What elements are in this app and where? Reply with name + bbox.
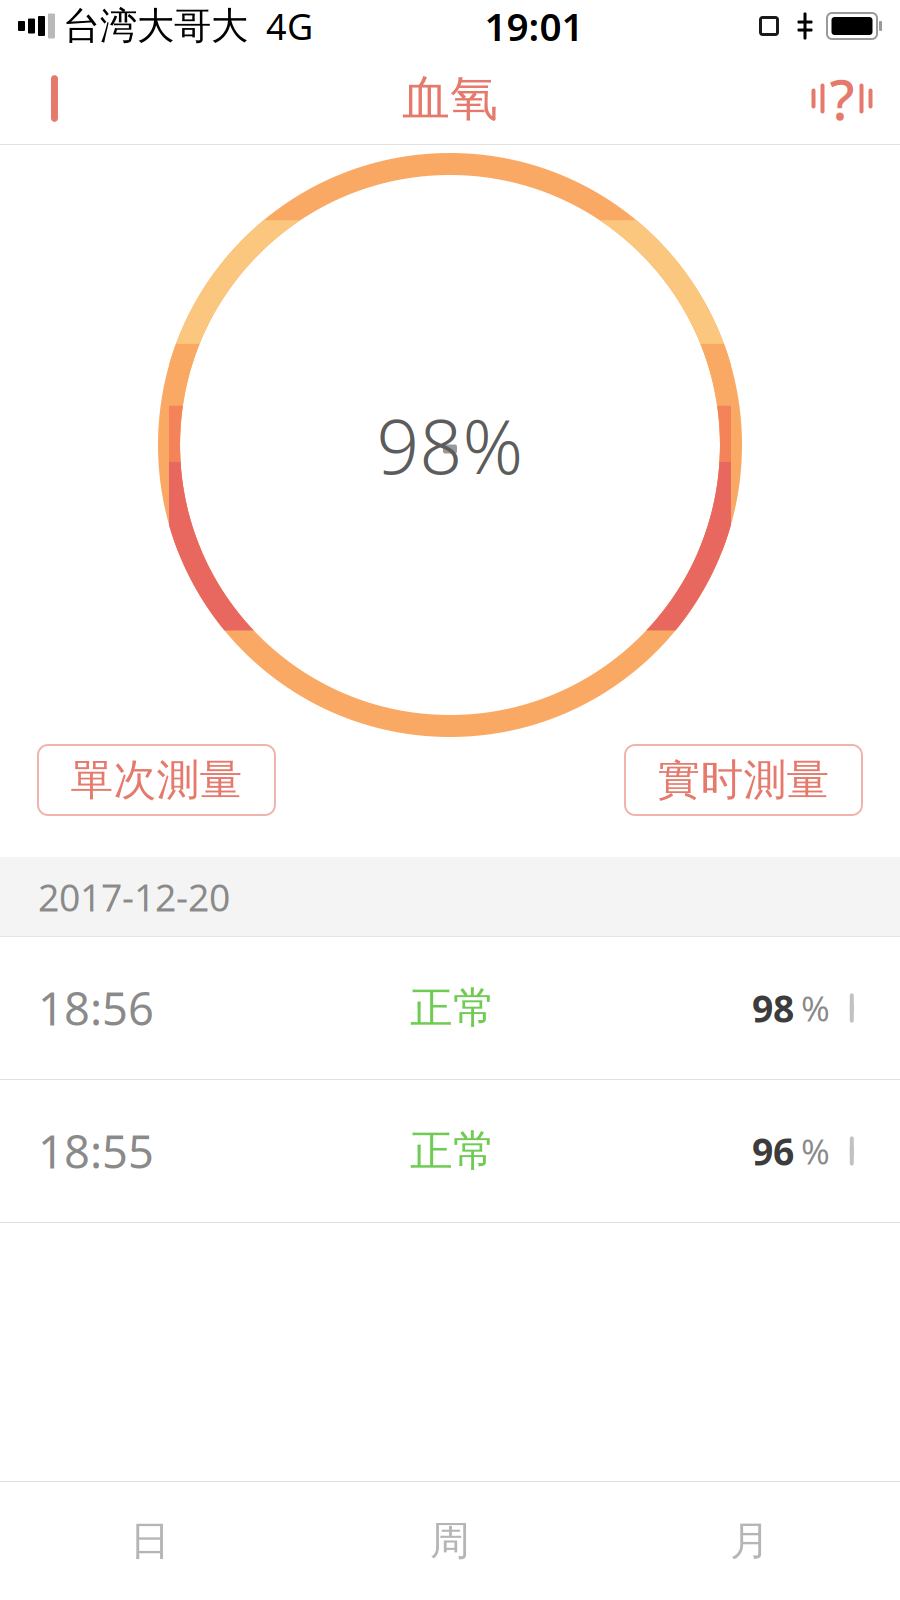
staticText: 單次測量 [70, 754, 242, 806]
staticText: 正常 [410, 982, 496, 1034]
staticText: 血氧 [402, 69, 498, 128]
staticText: 日 [130, 1516, 170, 1565]
button[interactable]: 實时測量 [625, 745, 862, 815]
staticText: 台湾大哥大 [63, 3, 248, 49]
staticText: 18:56 [38, 978, 154, 1038]
staticText: % [801, 1128, 830, 1174]
button[interactable]: 18:55 [0, 1080, 900, 1222]
staticText: 實时測量 [657, 754, 829, 806]
staticText: 19:01 [484, 0, 583, 52]
staticText: % [801, 985, 830, 1031]
staticText: 98% [376, 395, 523, 495]
staticText: 98 [752, 983, 794, 1033]
button[interactable]: 日 [0, 1482, 300, 1600]
button[interactable]: 月 [600, 1482, 900, 1600]
staticText: 正常 [410, 1125, 496, 1177]
staticText: ? [829, 61, 854, 136]
button[interactable]: Help [796, 52, 888, 145]
staticText: 18:55 [38, 1121, 154, 1181]
staticText: 96 [752, 1126, 794, 1176]
staticText: 周 [430, 1516, 470, 1565]
button[interactable]: 單次測量 [38, 745, 275, 815]
button[interactable]: 18:56 [0, 937, 900, 1079]
staticText: 月 [730, 1516, 770, 1565]
staticText: 4G [266, 2, 313, 50]
button[interactable]: 周 [300, 1482, 600, 1600]
button[interactable]: Back [12, 52, 104, 145]
staticText: 2017-12-20 [38, 872, 230, 922]
